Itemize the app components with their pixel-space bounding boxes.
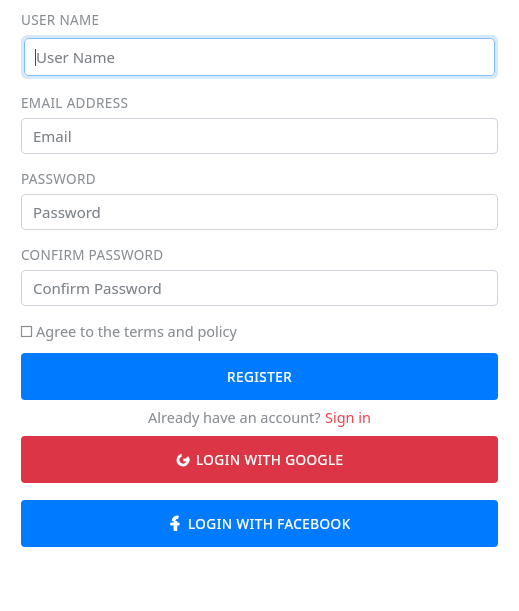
staticText: Already have an account? — [148, 407, 325, 427]
button[interactable]: Agree to the terms and policy — [21, 321, 498, 341]
staticText: LOGIN WITH GOOGLE — [196, 451, 344, 469]
button[interactable]: Password — [21, 194, 498, 230]
staticText: LOGIN WITH FACEBOOK — [188, 515, 351, 533]
button[interactable]: Google — [21, 436, 498, 483]
staticText: USER NAME — [21, 11, 100, 29]
staticText: PASSWORD — [21, 170, 96, 188]
staticText: User Name — [36, 47, 116, 67]
button[interactable]: Email — [21, 118, 498, 154]
staticText: Email — [33, 126, 72, 146]
staticText: REGISTER — [227, 368, 293, 386]
staticText: CONFIRM PASSWORD — [21, 246, 164, 264]
other: Facebook — [168, 517, 182, 531]
button[interactable]: User Name — [24, 38, 495, 76]
staticText: Sign in — [325, 407, 372, 427]
other: Google — [176, 453, 190, 467]
button[interactable]: Facebook — [21, 500, 498, 547]
button[interactable]: REGISTER — [21, 353, 498, 400]
staticText: Agree to the terms and policy — [36, 321, 237, 341]
staticText: Confirm Password — [33, 278, 162, 298]
staticText: EMAIL ADDRESS — [21, 94, 129, 112]
button[interactable]: Confirm Password — [21, 270, 498, 306]
button[interactable]: Sign in — [325, 407, 372, 427]
staticText: Password — [33, 202, 101, 222]
